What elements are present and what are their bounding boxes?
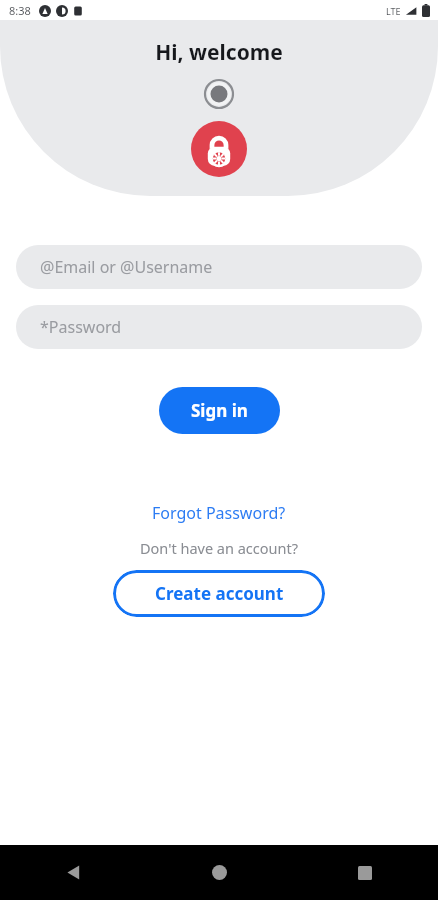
button[interactable]: Recent apps (292, 845, 438, 900)
staticText: Forgot Password? (152, 502, 286, 524)
staticText: *Password (40, 316, 122, 338)
button[interactable]: Home (146, 845, 292, 900)
staticText: Hi, welcome (155, 38, 283, 67)
other: Secure login (191, 121, 247, 177)
button[interactable]: Create account (113, 570, 325, 617)
button[interactable]: *Password (16, 305, 422, 349)
button[interactable]: @Email or @Username (16, 245, 422, 289)
staticText: Don't have an account? (140, 538, 298, 558)
staticText: 8:38 (9, 3, 31, 18)
staticText: Sign in (191, 399, 248, 422)
button[interactable]: Sign in (159, 387, 280, 434)
staticText: Create account (155, 582, 284, 605)
staticText: @Email or @Username (40, 256, 213, 278)
button[interactable]: Back (0, 845, 146, 900)
staticText: LTE (386, 5, 401, 17)
button[interactable]: Forgot Password? (144, 498, 294, 528)
